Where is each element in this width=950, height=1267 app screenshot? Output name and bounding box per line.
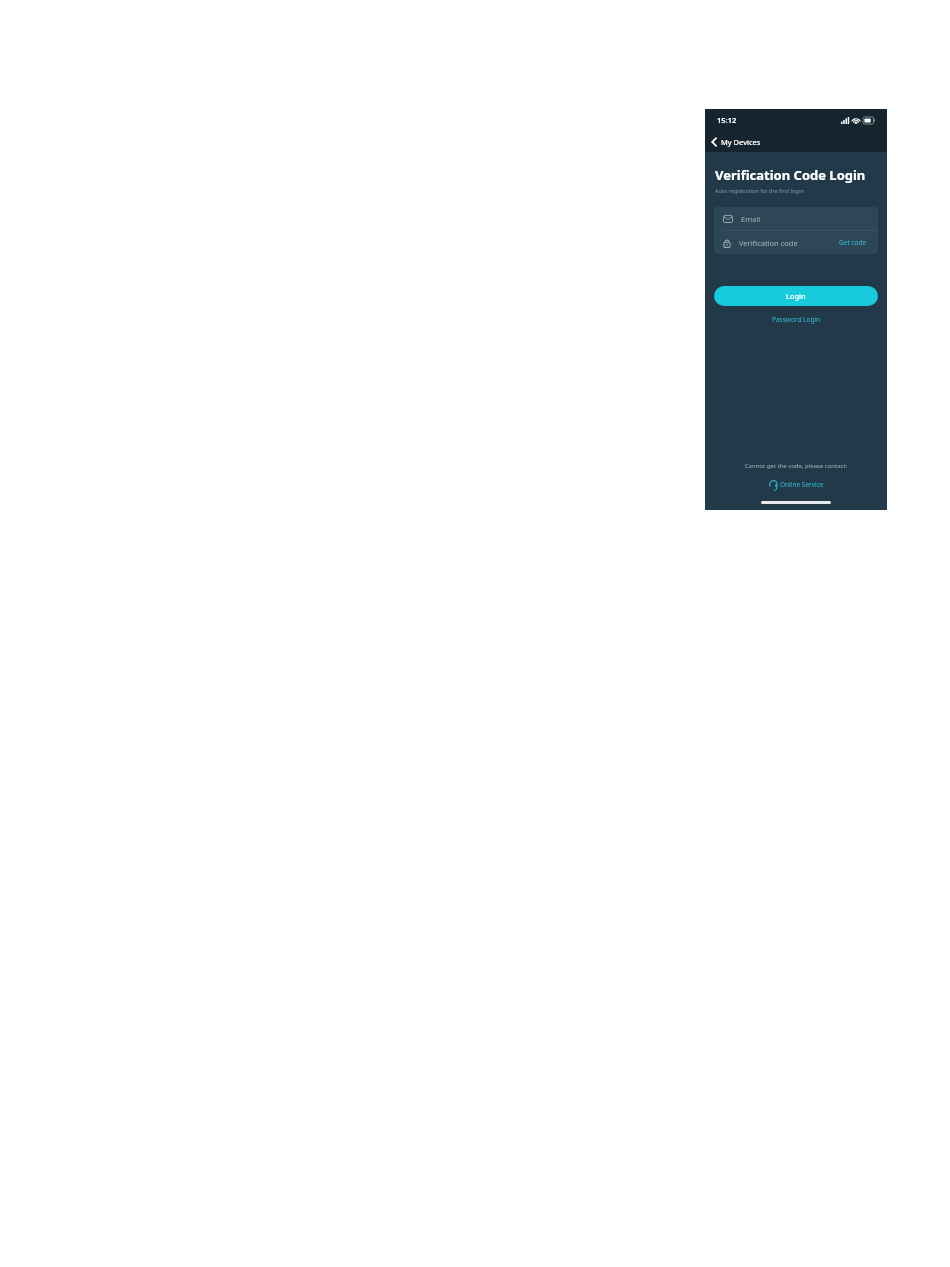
other: Back — [711, 137, 717, 147]
staticText: Online Service — [780, 480, 824, 489]
other: Online Service — [768, 479, 779, 490]
staticText: My Devices — [721, 137, 761, 147]
button[interactable]: Get code — [837, 235, 869, 250]
button[interactable]: Back — [705, 131, 769, 152]
button[interactable]: Online Service — [764, 477, 828, 492]
staticText: Password Login — [772, 315, 821, 324]
other: Email — [723, 215, 733, 223]
button[interactable]: Email — [714, 207, 878, 230]
staticText: Auto registration for the first login — [715, 187, 804, 194]
button[interactable]: Login — [714, 286, 878, 306]
staticText: Email — [741, 214, 761, 224]
other: Verification code — [723, 238, 731, 248]
other: Wi-Fi — [852, 117, 860, 124]
staticText: 15:12 — [717, 115, 737, 125]
other: Cellular signal — [841, 117, 849, 124]
staticText: Cannot get the code, please contact: — [705, 462, 887, 470]
staticText: Get code — [839, 238, 867, 247]
staticText: Verification Code Login — [715, 166, 866, 184]
staticText: Login — [786, 291, 806, 301]
button[interactable]: Password Login — [766, 312, 827, 327]
staticText: Verification code — [739, 238, 798, 248]
button[interactable]: Verification code — [714, 231, 878, 254]
other: Battery — [863, 117, 875, 124]
